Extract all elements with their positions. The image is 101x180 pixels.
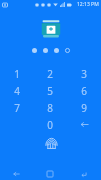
button[interactable]: Recents [67, 167, 101, 180]
button[interactable]: 7 [0, 99, 33, 116]
button[interactable]: 5 [33, 82, 67, 99]
button[interactable]: 9 [67, 99, 101, 116]
staticText: 5 [47, 84, 53, 98]
button[interactable]: 0 [33, 116, 67, 133]
button[interactable]: Home [33, 167, 67, 180]
button[interactable]: Backspace [67, 116, 101, 133]
button[interactable]: 3 [67, 65, 101, 82]
button[interactable]: 1 [0, 65, 33, 82]
staticText: 7 [14, 101, 20, 115]
staticText: 4 [14, 84, 20, 98]
button[interactable]: Fingerprint unlock [43, 135, 59, 151]
staticText: 9 [81, 101, 87, 115]
button[interactable]: Back [0, 167, 33, 180]
staticText: 2 [47, 67, 53, 81]
staticText: 8 [47, 101, 53, 115]
staticText: 1 [14, 67, 20, 81]
button[interactable]: 8 [33, 99, 67, 116]
staticText: 0 [47, 118, 53, 132]
staticText: 12:13 PM [77, 1, 99, 8]
staticText: 3 [81, 67, 87, 81]
button[interactable]: 6 [67, 82, 101, 99]
button[interactable]: 2 [33, 65, 67, 82]
button[interactable]: 4 [0, 82, 33, 99]
staticText: 6 [81, 84, 87, 98]
